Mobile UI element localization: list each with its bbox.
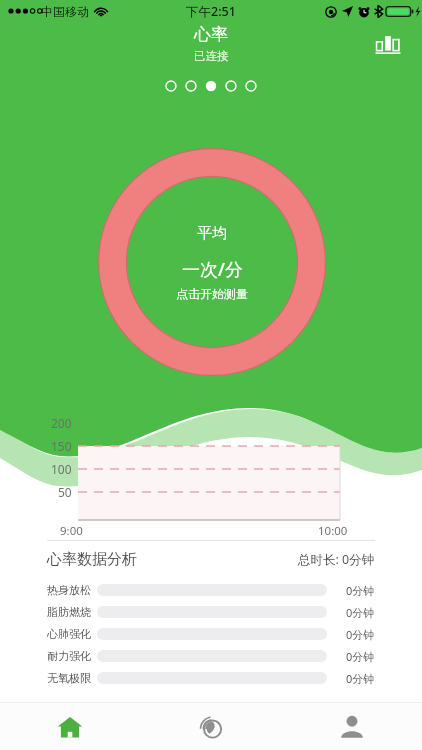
staticText: 心率 [194,24,228,45]
staticText: 总时长: 0分钟 [298,551,375,568]
staticText: 心肺强化 [47,627,91,641]
staticText: 下午2:51 [186,3,236,20]
staticText: 0分钟 [346,671,375,686]
staticText: 无氧极限 [47,671,91,685]
staticText: 150 [51,438,72,454]
button[interactable]: 我的 [281,703,422,750]
button[interactable]: 脂肪燃烧 [0,601,422,623]
staticText: 10:00 [318,523,348,539]
staticText: 100 [51,461,72,477]
staticText: 50 [58,484,72,500]
staticText: 9:00 [60,523,83,539]
button[interactable]: 首页 [0,703,140,750]
staticText: 心率数据分析 [47,550,137,569]
staticText: 一次/分 [182,257,243,282]
button[interactable]: 热身放松 [0,579,422,601]
staticText: 热身放松 [47,583,91,597]
button[interactable]: 设备 [140,703,281,750]
staticText: 0分钟 [346,627,375,642]
staticText: 中国移动 [41,4,89,19]
button[interactable]: 心肺强化 [0,623,422,645]
staticText: 0分钟 [346,605,375,620]
staticText: 200 [51,415,72,431]
staticText: 平均 [197,224,227,243]
button[interactable]: 开始测量 [98,148,326,376]
staticText: 脂肪燃烧 [47,605,91,619]
staticText: 0分钟 [346,583,375,598]
staticText: 0分钟 [346,649,375,664]
button[interactable]: 无氧极限 [0,667,422,689]
staticText: 已连接 [194,49,229,63]
button[interactable]: History chart [368,24,408,64]
staticText: 点击开始测量 [176,286,248,301]
button[interactable]: 耐力强化 [0,645,422,667]
staticText: 耐力强化 [47,649,91,663]
